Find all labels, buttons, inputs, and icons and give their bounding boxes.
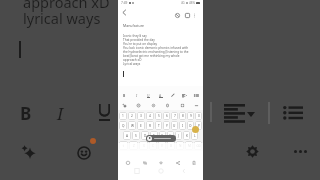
staticText: 4: [149, 114, 151, 118]
button[interactable]: H: [167, 131, 174, 140]
staticText: U: [173, 124, 176, 128]
button[interactable]: 5: [155, 112, 162, 120]
staticText: 4G: [181, 1, 185, 5]
staticText: 8: [182, 114, 184, 118]
button[interactable]: Voice: [150, 102, 157, 109]
staticText: K: [186, 134, 188, 138]
button[interactable]: 3: [137, 112, 145, 120]
button[interactable]: G: [159, 131, 166, 140]
staticText: A: [126, 134, 129, 138]
button[interactable]: W: [128, 121, 136, 130]
button[interactable]: 8: [179, 112, 186, 120]
button[interactable]: I: [179, 121, 186, 130]
button[interactable]: E: [137, 121, 145, 130]
staticText: B: [170, 144, 173, 148]
staticText: P: [198, 124, 200, 128]
button[interactable]: Q: [119, 121, 127, 130]
staticText: R: [149, 124, 151, 128]
staticText: X: [143, 144, 145, 148]
button[interactable]: Like: [156, 158, 165, 167]
staticText: L: [194, 134, 196, 138]
button[interactable]: Home: [156, 168, 166, 178]
button[interactable]: Sparkle: [121, 102, 128, 109]
button[interactable]: Undo: [175, 13, 180, 18]
staticText: Manufacture: [123, 23, 145, 28]
button[interactable]: Attach: [164, 102, 171, 109]
button[interactable]: J: [175, 131, 182, 140]
button[interactable]: L: [191, 131, 198, 140]
button[interactable]: ⇧: [119, 141, 128, 150]
staticText: S: [135, 134, 137, 138]
button[interactable]: C: [149, 141, 157, 150]
button[interactable]: 0: [195, 112, 202, 120]
button[interactable]: More options: [193, 13, 196, 18]
button[interactable]: Align: [181, 92, 188, 99]
button[interactable]: O: [187, 121, 194, 130]
staticText: approach xD: [123, 58, 142, 62]
button[interactable]: V: [158, 141, 166, 150]
button[interactable]: U: [145, 92, 152, 99]
staticText: You're to put on display: [123, 42, 158, 46]
button[interactable]: B: [121, 92, 128, 99]
staticText: D: [144, 134, 147, 138]
button[interactable]: Save: [185, 13, 190, 18]
staticText: U: [147, 93, 150, 98]
button[interactable]: 7: [171, 112, 178, 120]
button[interactable]: I: [133, 92, 140, 99]
staticText: E: [140, 124, 142, 128]
button[interactable]: Share: [173, 158, 182, 167]
button[interactable]: A: [157, 92, 164, 99]
staticText: ⇧: [122, 144, 125, 148]
button[interactable]: F: [150, 131, 158, 140]
staticText: I: [182, 124, 184, 128]
button[interactable]: K: [183, 131, 190, 140]
button[interactable]: Settings: [179, 102, 186, 109]
staticText: W: [131, 124, 134, 128]
button[interactable]: U: [171, 121, 178, 130]
button[interactable]: Back: [179, 168, 189, 178]
staticText: 7: [174, 114, 176, 118]
staticText: I: [57, 102, 64, 125]
staticText: J: [178, 134, 179, 138]
button[interactable]: Y: [163, 121, 170, 130]
staticText: C: [152, 144, 155, 148]
staticText: beat] beat got me rethinking my whole: [123, 54, 180, 58]
staticText: N: [179, 144, 182, 148]
button[interactable]: Bullet list: [193, 92, 200, 99]
button[interactable]: M: [185, 141, 193, 150]
button[interactable]: Highlight pen: [169, 92, 176, 99]
staticText: Iconic they'd say: [123, 34, 147, 38]
button[interactable]: Reply: [123, 158, 132, 167]
staticText: Y: [166, 124, 168, 128]
staticText: lyrical ways: [23, 8, 101, 28]
button[interactable]: 1: [119, 112, 127, 120]
button[interactable]: Recents: [132, 168, 142, 178]
button[interactable]: Repost: [140, 158, 149, 167]
button[interactable]: R: [146, 121, 154, 130]
staticText: 6: [166, 114, 168, 118]
button[interactable]: T: [155, 121, 162, 130]
button[interactable]: N: [176, 141, 184, 150]
staticText: Q: [122, 124, 125, 128]
button[interactable]: Emoji: [135, 102, 142, 109]
button[interactable]: A: [123, 131, 131, 140]
button[interactable]: B: [167, 141, 175, 150]
button[interactable]: Collapse: [193, 102, 200, 109]
staticText: 7:49: [121, 1, 128, 5]
button[interactable]: 2: [128, 112, 136, 120]
staticText: the hydroelectric enchanting [listening …: [123, 50, 189, 54]
button[interactable]: X: [139, 141, 148, 150]
button[interactable]: 4: [146, 112, 154, 120]
staticText: H: [169, 134, 172, 138]
button[interactable]: 6: [163, 112, 170, 120]
button[interactable]: S: [132, 131, 140, 140]
button[interactable]: Z: [129, 141, 138, 150]
button[interactable]: Back: [122, 10, 127, 15]
button[interactable]: Bookmark: [189, 158, 198, 167]
button[interactable]: D: [141, 131, 149, 140]
button[interactable]: P: [195, 121, 202, 130]
staticText: B: [20, 102, 32, 125]
button[interactable]: ⌫: [194, 141, 202, 150]
staticText: You lack iconic demonic phonics infused …: [123, 46, 189, 50]
button[interactable]: 9: [187, 112, 194, 120]
